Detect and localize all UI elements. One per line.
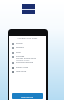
button[interactable]: Total price [9,70,46,74]
staticText: Total price [16,70,27,73]
staticText: Promo code [16,66,28,69]
staticText: Confirm your order [9,37,46,40]
staticText: Delivery [16,46,24,49]
staticText: Medium [16,58,24,59]
staticText: Courier arrives soon [16,57,36,60]
button[interactable]: Package [9,55,46,59]
button[interactable]: Promo code [9,66,46,70]
staticText: Date [16,51,21,54]
staticText: Payment method [16,61,33,64]
button[interactable]: Brand logo [22,4,35,14]
button[interactable]: CONTINUE [12,93,43,99]
button[interactable]: Date [9,51,46,55]
staticText: CONTINUE [21,95,34,98]
staticText: Pickup [16,42,23,45]
staticText: Window 2-4pm [16,59,30,62]
button[interactable]: Pickup [9,42,46,46]
button[interactable]: Delivery [9,46,46,50]
button[interactable]: Payment method [9,61,46,65]
staticText: Package [16,55,25,58]
